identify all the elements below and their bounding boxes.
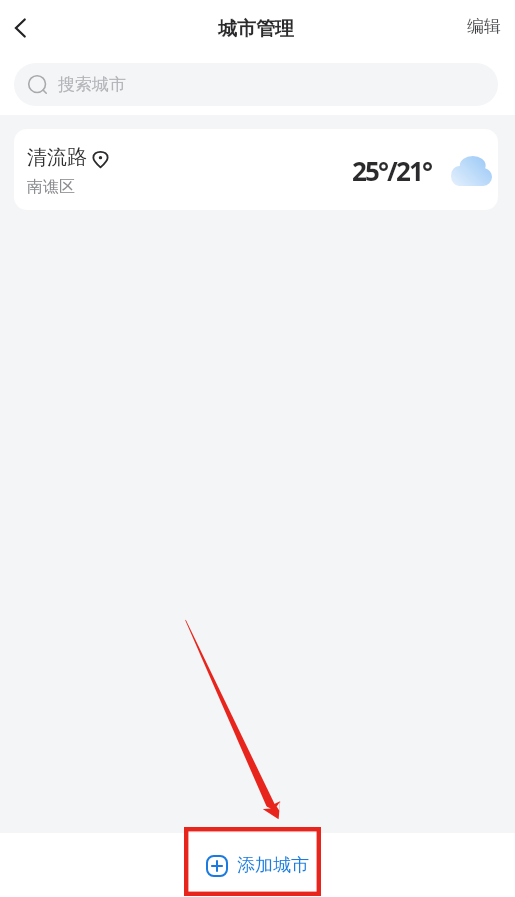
staticText: 城市管理 (218, 17, 294, 41)
staticText: 编辑 (467, 16, 501, 37)
staticText: 南谯区 (27, 177, 75, 197)
button[interactable]: 清流路 (14, 129, 498, 210)
staticText: 25°/21° (352, 153, 432, 188)
button[interactable]: Back (0, 8, 40, 48)
button[interactable]: 搜索城市 (14, 63, 498, 106)
staticText: 搜索城市 (58, 74, 126, 95)
staticText: 清流路 (27, 145, 87, 170)
button[interactable]: 添加城市 (182, 840, 333, 891)
staticText: 添加城市 (237, 854, 309, 877)
button[interactable]: 编辑 (451, 6, 515, 49)
